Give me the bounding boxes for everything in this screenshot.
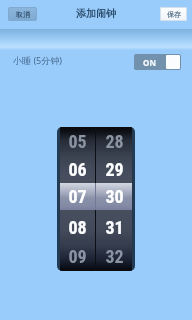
staticText: 28 bbox=[105, 131, 124, 152]
staticText: 06 bbox=[68, 159, 87, 180]
staticText: 30 bbox=[105, 186, 124, 207]
staticText: 09 bbox=[68, 246, 87, 267]
button[interactable]: 32 bbox=[96, 242, 132, 271]
staticText: 29 bbox=[105, 159, 124, 180]
staticText: 07 bbox=[68, 188, 87, 209]
staticText: 08 bbox=[68, 217, 87, 238]
staticText: 31 bbox=[105, 217, 124, 238]
button[interactable]: Snooze toggle on bbox=[134, 54, 181, 70]
staticText: 07 bbox=[68, 186, 87, 207]
button[interactable]: 31 bbox=[96, 213, 132, 242]
button[interactable]: 05 bbox=[60, 127, 95, 155]
button[interactable]: 06 bbox=[60, 155, 95, 184]
button[interactable]: 29 bbox=[96, 155, 132, 184]
staticText: 32 bbox=[105, 246, 124, 267]
staticText: 30 bbox=[105, 188, 124, 209]
staticText: 添加闹钟 bbox=[76, 7, 116, 20]
button[interactable]: 07 bbox=[60, 184, 95, 213]
button[interactable]: 保存 bbox=[160, 7, 187, 21]
button[interactable]: 取消 bbox=[8, 7, 37, 21]
button[interactable]: 30 bbox=[96, 184, 132, 213]
button[interactable]: 09 bbox=[60, 242, 95, 271]
staticText: 取消 bbox=[16, 10, 30, 19]
staticText: 05 bbox=[68, 131, 87, 152]
button[interactable]: 28 bbox=[96, 127, 132, 155]
staticText: ON bbox=[143, 57, 156, 68]
staticText: 保存 bbox=[167, 10, 181, 19]
staticText: 小睡 (5分钟) bbox=[13, 54, 62, 66]
button[interactable]: 08 bbox=[60, 213, 95, 242]
